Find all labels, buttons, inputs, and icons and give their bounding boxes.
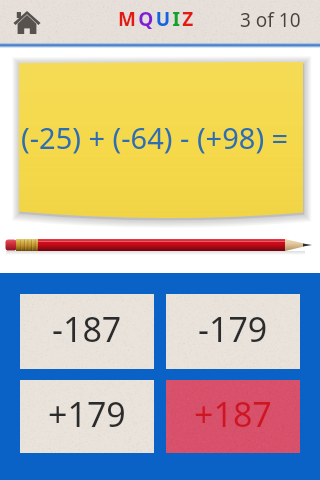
button[interactable]: +179 (20, 380, 154, 453)
staticText: MQUIZ (118, 6, 196, 32)
button[interactable]: +187 (166, 380, 300, 453)
staticText: +179 (48, 391, 126, 437)
staticText: (-25) + (-64) - (+98) = (21, 118, 289, 157)
staticText: -187 (52, 306, 122, 352)
staticText: 3 of 10 (240, 7, 301, 33)
button[interactable]: Home (13, 10, 41, 36)
staticText: +187 (194, 391, 272, 437)
button[interactable]: -187 (20, 294, 154, 369)
button[interactable]: -179 (166, 294, 300, 369)
staticText: -179 (198, 306, 268, 352)
